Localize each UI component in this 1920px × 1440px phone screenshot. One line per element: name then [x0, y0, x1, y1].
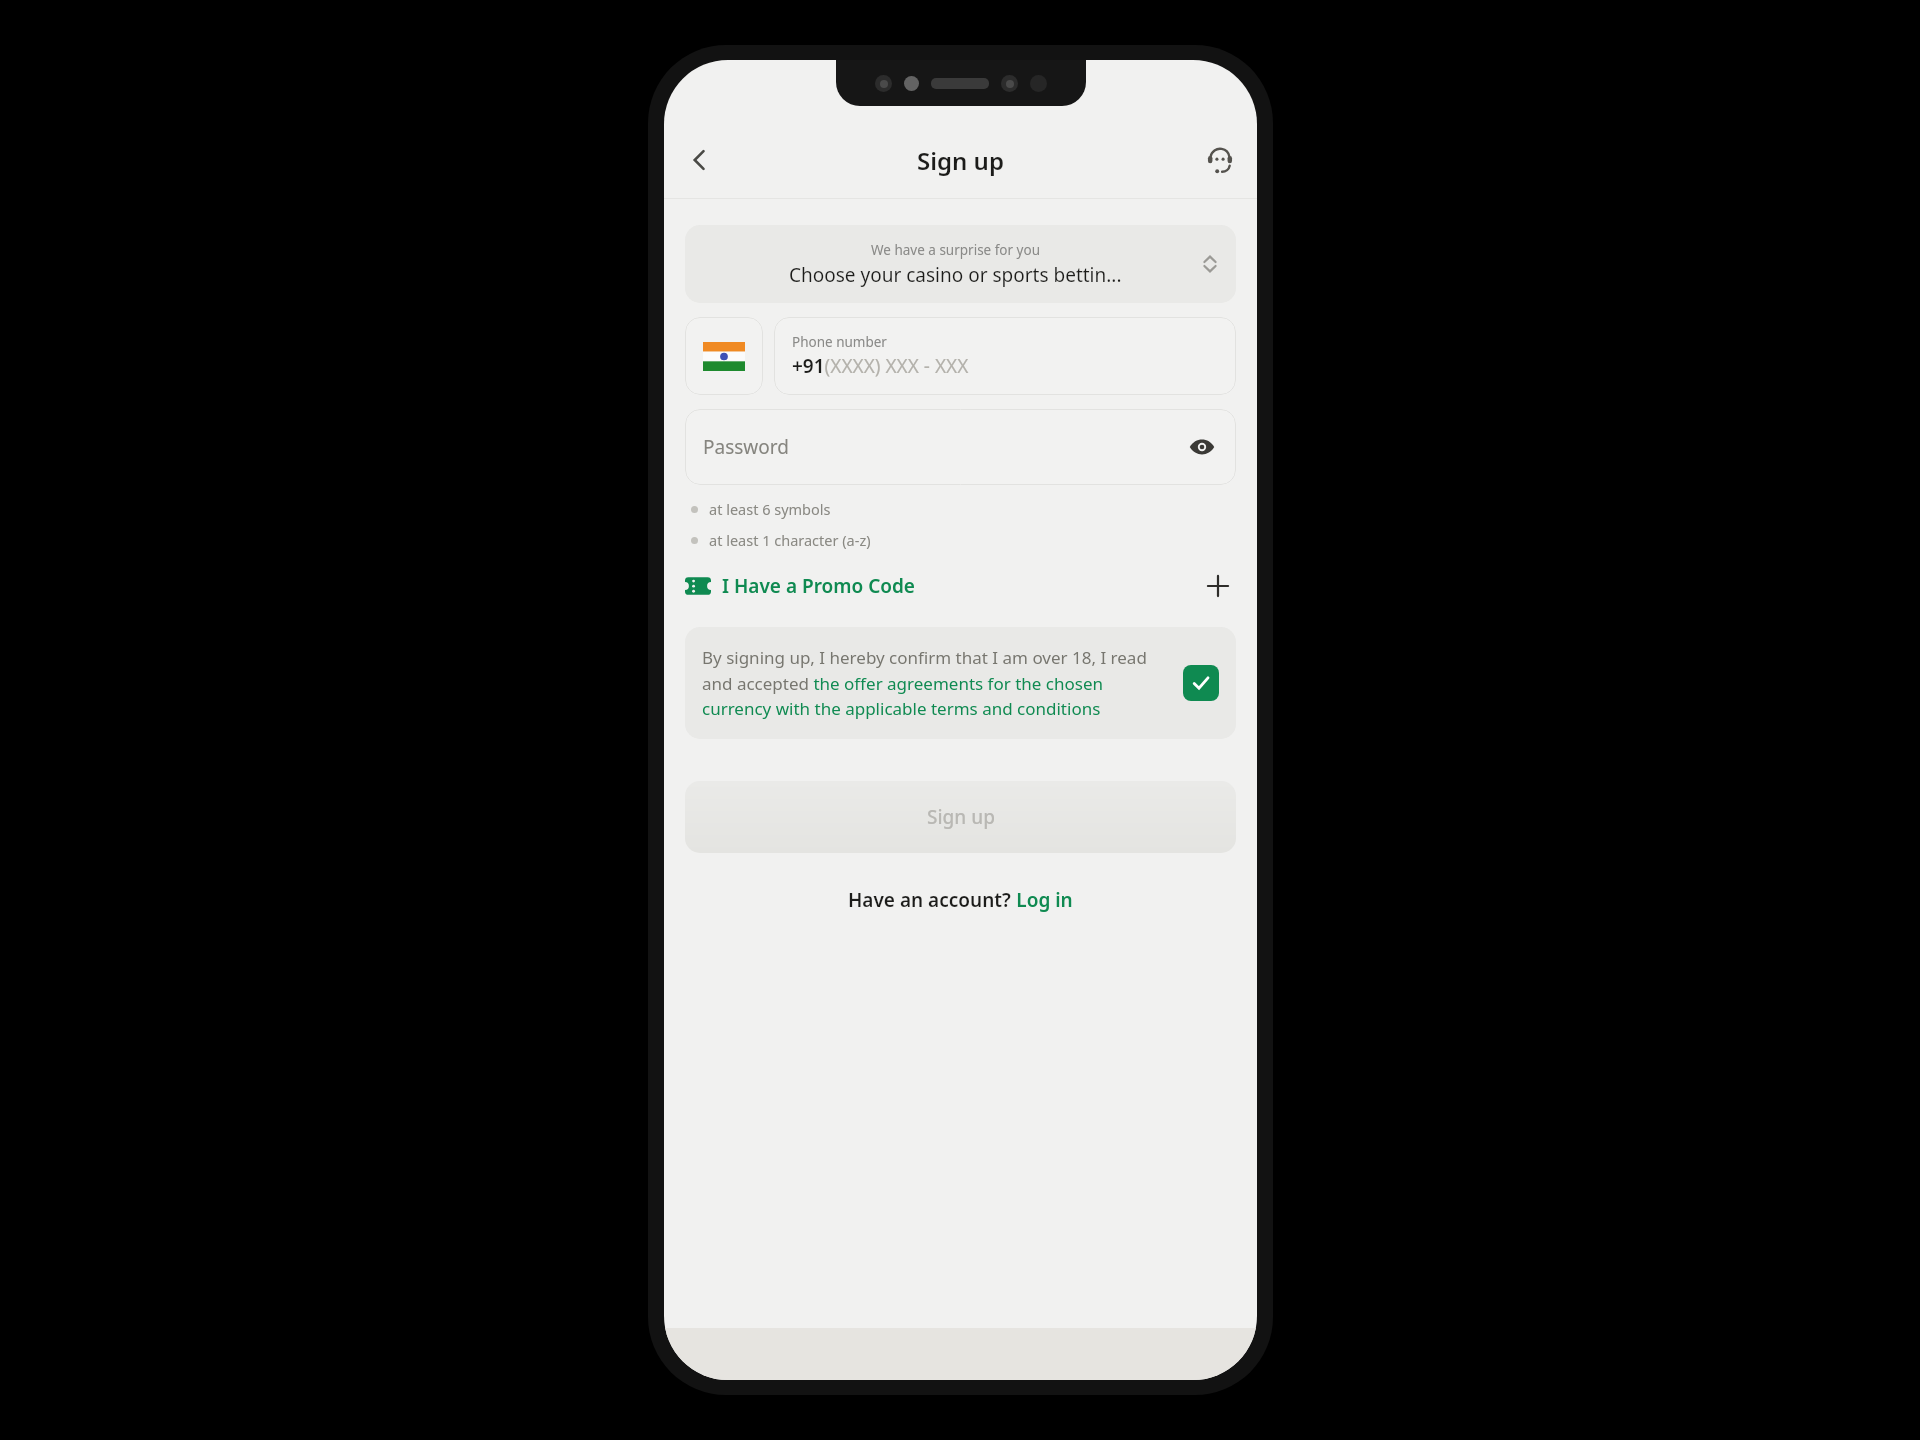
- staticText: Choose your casino or sports bettin...: [789, 262, 1122, 288]
- button[interactable]: Accept terms: [1183, 665, 1219, 701]
- button[interactable]: Select country: [685, 317, 763, 395]
- staticText: Sign up: [917, 144, 1004, 177]
- button[interactable]: Back: [676, 136, 724, 184]
- button[interactable]: Password: [685, 409, 1236, 485]
- staticText: Have an account?: [848, 887, 1016, 913]
- staticText: Log in: [1016, 887, 1073, 913]
- button[interactable]: Have an account?: [848, 887, 1073, 913]
- staticText: By signing up, I hereby confirm that I a…: [702, 646, 1169, 720]
- staticText: I Have a Promo Code: [722, 573, 915, 599]
- staticText: We have a surprise for you: [871, 241, 1041, 259]
- button[interactable]: I Have a Promo Code: [685, 562, 1236, 610]
- button[interactable]: Show password: [1182, 427, 1222, 467]
- staticText: Sign up: [927, 804, 995, 830]
- button[interactable]: Support: [1197, 137, 1243, 183]
- button[interactable]: We have a surprise for you: [685, 225, 1236, 303]
- button[interactable]: By signing up, I hereby confirm that I a…: [685, 627, 1236, 739]
- button[interactable]: Sign up: [685, 781, 1236, 853]
- staticText: Phone number: [792, 333, 887, 351]
- staticText: at least 1 character (a-z): [709, 530, 871, 550]
- staticText: +91(XXXX) XXX - XXX: [792, 353, 969, 379]
- staticText: at least 6 symbols: [709, 499, 831, 519]
- button[interactable]: Phone number: [774, 317, 1236, 395]
- staticText: Password: [703, 434, 789, 460]
